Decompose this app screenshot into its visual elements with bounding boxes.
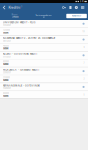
staticText: 08.11.2021 bbox=[3, 40, 11, 42]
button[interactable]: REFINANSIRANJE - GOTOVINSKI bbox=[0, 83, 88, 91]
staticText: NAMENSKI KREDIT 2 - ZAHTEV ZA ODOBRENJE bbox=[3, 37, 55, 40]
button[interactable]: 650.000 bbox=[0, 91, 88, 98]
staticText: Kreditni bbox=[8, 6, 20, 9]
staticText: 2 bbox=[84, 78, 85, 80]
staticText: 480.000 bbox=[3, 45, 9, 47]
button[interactable]: UNIVERZALNI KREDIT - PLUS bbox=[0, 20, 88, 27]
button[interactable]: KLIJENT - GOTOVINSKI KREDIT bbox=[0, 52, 88, 59]
staticText: Sudski bbox=[3, 47, 8, 50]
staticText: UNIVERZALNI KREDIT - PLUS bbox=[3, 21, 35, 24]
staticText: 650.000 bbox=[3, 92, 9, 94]
staticText: 01.10.2021 bbox=[3, 56, 11, 58]
button[interactable]: History bbox=[75, 6, 78, 9]
button[interactable]: Documents bbox=[69, 6, 71, 9]
staticText: 1.250.000 bbox=[3, 29, 10, 31]
button[interactable]: 2.100.000 bbox=[0, 75, 88, 83]
button[interactable]: NAMENSKI KREDIT 2 - ZAHTEV ZA ODOBRENJE bbox=[0, 36, 88, 43]
button[interactable]: Sortirano po datumu bbox=[35, 14, 52, 18]
staticText: Ukupno bbox=[11, 14, 17, 16]
button[interactable]: NOVI ZAHTEV bbox=[66, 14, 87, 18]
staticText: 820.000 bbox=[3, 61, 9, 63]
staticText: Sudski bbox=[3, 32, 8, 34]
staticText: 22.09.2021 bbox=[3, 72, 11, 74]
staticText: KLIJENT - GOTOVINSKI KREDIT bbox=[3, 53, 37, 55]
staticText: Sudski bbox=[3, 63, 8, 66]
staticText: 10.12.2021 bbox=[3, 24, 11, 26]
staticText: 2.100.000 bbox=[3, 77, 10, 78]
button[interactable]: 820.000 bbox=[0, 59, 88, 67]
button[interactable]: Permissions bbox=[62, 6, 66, 9]
button[interactable]: Back bbox=[0, 3, 8, 12]
button[interactable]: POZAJMICA - STAMBENI KREDIT bbox=[0, 67, 88, 75]
button[interactable]: 480.000 bbox=[0, 44, 88, 51]
staticText: NOVI ZAHTEV bbox=[72, 15, 81, 17]
staticText: Sudski bbox=[3, 79, 8, 81]
staticText: 3 bbox=[21, 6, 22, 8]
staticText: 9:41 bbox=[80, 0, 84, 3]
staticText: 10 bbox=[83, 30, 85, 33]
staticText: 15.09.2021 bbox=[3, 87, 11, 89]
staticText: Sortirano po datumu bbox=[35, 14, 52, 16]
staticText: 7 bbox=[84, 62, 85, 64]
button[interactable]: Menu bbox=[81, 6, 84, 9]
staticText: POZAJMICA - STAMBENI KREDIT bbox=[3, 68, 39, 71]
staticText: Sudski bbox=[3, 95, 8, 97]
staticText: 1.240.000 bbox=[11, 16, 18, 18]
staticText: REFINANSIRANJE - GOTOVINSKI bbox=[3, 84, 40, 87]
button[interactable]: 1.250.000 bbox=[0, 28, 88, 35]
